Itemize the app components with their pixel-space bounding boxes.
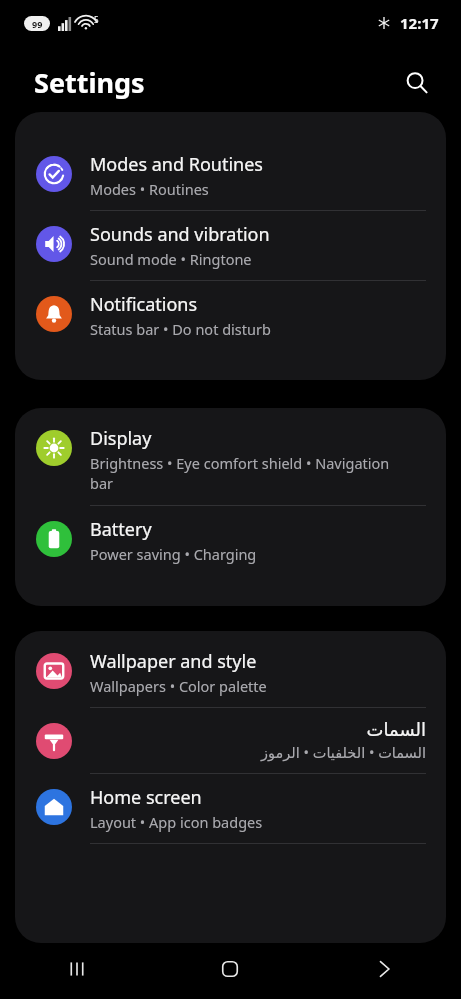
button[interactable]: Modes and Routines xyxy=(15,141,446,210)
staticText: Display xyxy=(90,426,152,451)
staticText: 12:17 xyxy=(400,13,439,33)
staticText: Modes and Routines xyxy=(90,152,263,177)
button[interactable]: Home screen xyxy=(15,774,446,843)
staticText: Wallpaper and style xyxy=(90,649,257,674)
staticText: Home screen xyxy=(90,785,202,810)
button[interactable]: Recents xyxy=(0,939,153,999)
staticText: 99 xyxy=(32,18,43,30)
staticText: السمات xyxy=(90,719,426,740)
button[interactable]: Sounds and vibration xyxy=(15,211,446,280)
staticText: Battery xyxy=(90,517,152,542)
button[interactable]: Display xyxy=(15,415,446,505)
button[interactable]: Home xyxy=(153,939,307,999)
button[interactable]: السمات xyxy=(15,708,446,773)
staticText: Modes • Routines xyxy=(90,179,209,199)
staticText: Brightness • Eye comfort shield • Naviga… xyxy=(90,453,390,494)
staticText: Status bar • Do not disturb xyxy=(90,319,271,339)
button[interactable]: Search xyxy=(397,63,437,103)
staticText: Wallpapers • Color palette xyxy=(90,676,267,696)
staticText: Settings xyxy=(34,64,145,101)
staticText: 5 xyxy=(94,14,99,25)
staticText: Sound mode • Ringtone xyxy=(90,249,252,269)
button[interactable]: Back xyxy=(307,939,461,999)
button[interactable]: Wallpaper and style xyxy=(15,638,446,707)
staticText: Layout • App icon badges xyxy=(90,812,263,832)
staticText: Notifications xyxy=(90,292,198,317)
staticText: Power saving • Charging xyxy=(90,544,257,564)
staticText: السمات • الخلفيات • الرموز xyxy=(90,742,426,762)
button[interactable]: Notifications xyxy=(15,281,446,350)
staticText: Sounds and vibration xyxy=(90,222,270,247)
button[interactable]: Battery xyxy=(15,506,446,575)
